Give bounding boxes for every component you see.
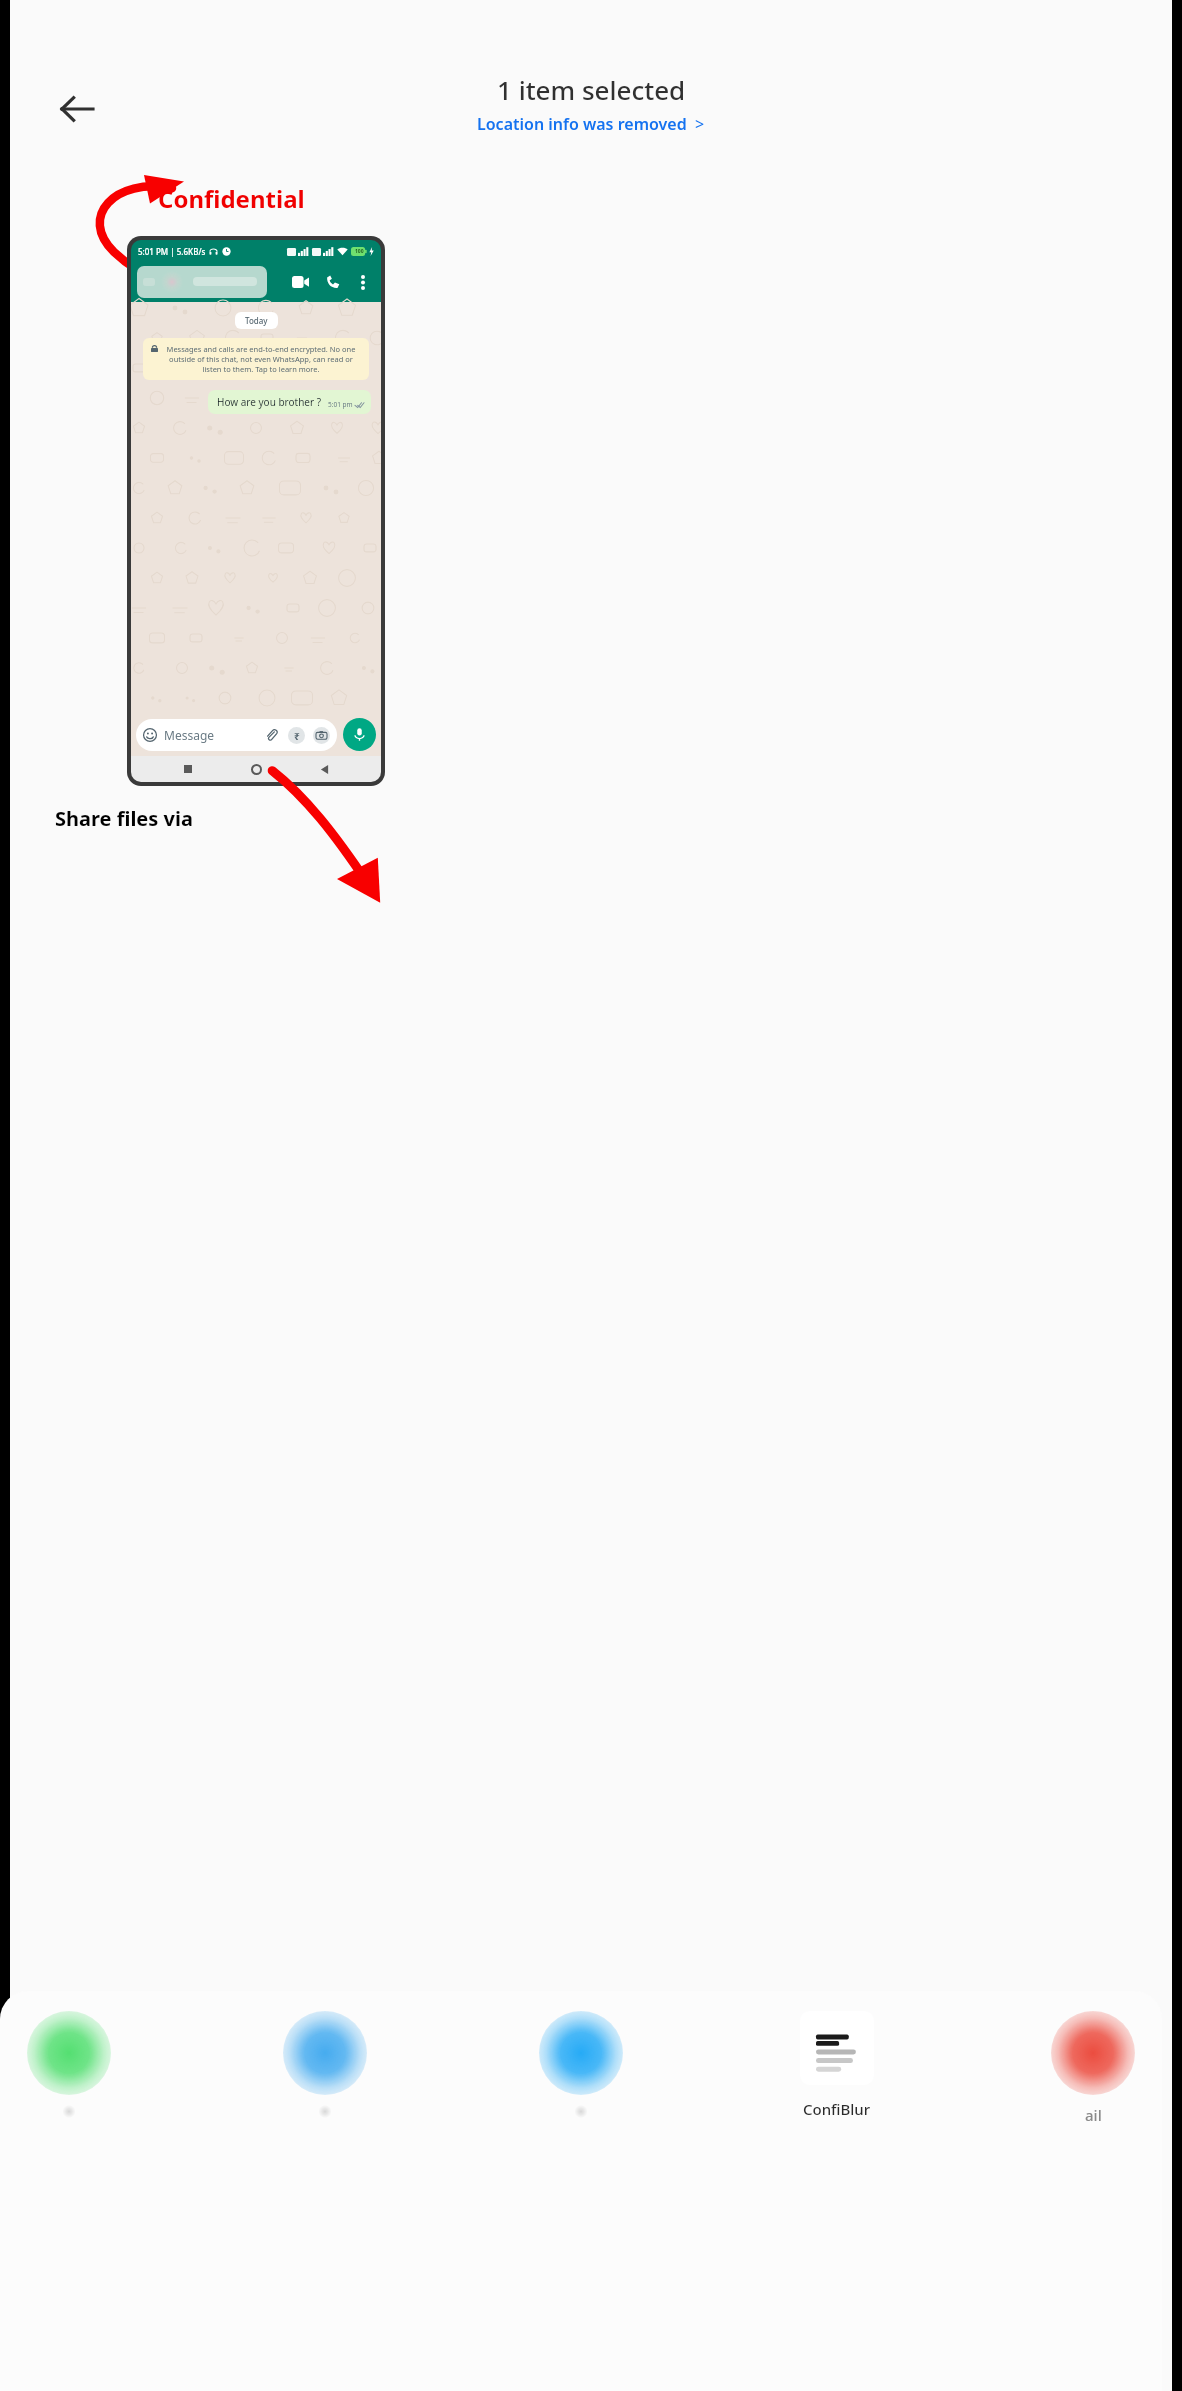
staticText: Messages and calls are end-to-end encryp… (161, 344, 361, 374)
staticText: ail (1085, 2105, 1102, 2125)
staticText: How are you brother ? (217, 395, 322, 409)
staticText: ConfiBlur (803, 2099, 871, 2119)
button[interactable]: Camera (313, 727, 330, 744)
staticText: Today (245, 315, 268, 326)
button[interactable]: Recents (177, 758, 199, 780)
staticText: 5:01 pm (328, 400, 353, 409)
button[interactable]: Back (313, 758, 335, 780)
button[interactable]: Video call (287, 269, 313, 295)
button[interactable]: Share target (4, 2011, 134, 2118)
button[interactable]: Voice message (343, 718, 376, 751)
button[interactable]: Back (50, 82, 104, 136)
staticText: 100 (355, 248, 364, 255)
button[interactable]: Message (136, 719, 337, 751)
button[interactable]: Home (245, 758, 267, 780)
button[interactable]: Share target (516, 2011, 646, 2118)
button[interactable]: ConfiBlur (772, 2011, 902, 2119)
staticText: Message (164, 727, 215, 743)
staticText: 5:01 PM | 5.6KB/s (138, 246, 206, 257)
button[interactable]: Share target (260, 2011, 390, 2118)
staticText: > (695, 113, 705, 135)
button[interactable]: Location info was removed (477, 113, 705, 135)
staticText: Confidential (158, 182, 305, 215)
staticText: 1 item selected (497, 72, 686, 107)
staticText: Location info was removed (477, 113, 687, 135)
button[interactable]: Attach (262, 726, 280, 744)
staticText: Share files via (55, 805, 193, 832)
button[interactable]: More options (351, 270, 375, 294)
button[interactable] (137, 266, 267, 298)
button[interactable]: Voice call (320, 269, 346, 295)
button[interactable]: Share target (1028, 2011, 1158, 2125)
staticText: ₹ (294, 729, 300, 743)
button[interactable]: Payments (288, 727, 305, 744)
